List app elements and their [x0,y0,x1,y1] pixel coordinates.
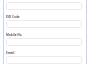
staticText: ISD Code [6,15,20,19]
staticText: Email [6,51,15,55]
button[interactable]: Name [6,2,82,10]
button[interactable]: Email [6,51,15,55]
button[interactable]: ISD Code [6,15,20,19]
button[interactable]: Email [6,56,82,64]
button[interactable]: Mobile No [6,33,22,37]
button[interactable]: Mobile No [6,38,82,46]
button[interactable]: ISD Code [6,20,82,28]
staticText: Mobile No [6,33,22,37]
